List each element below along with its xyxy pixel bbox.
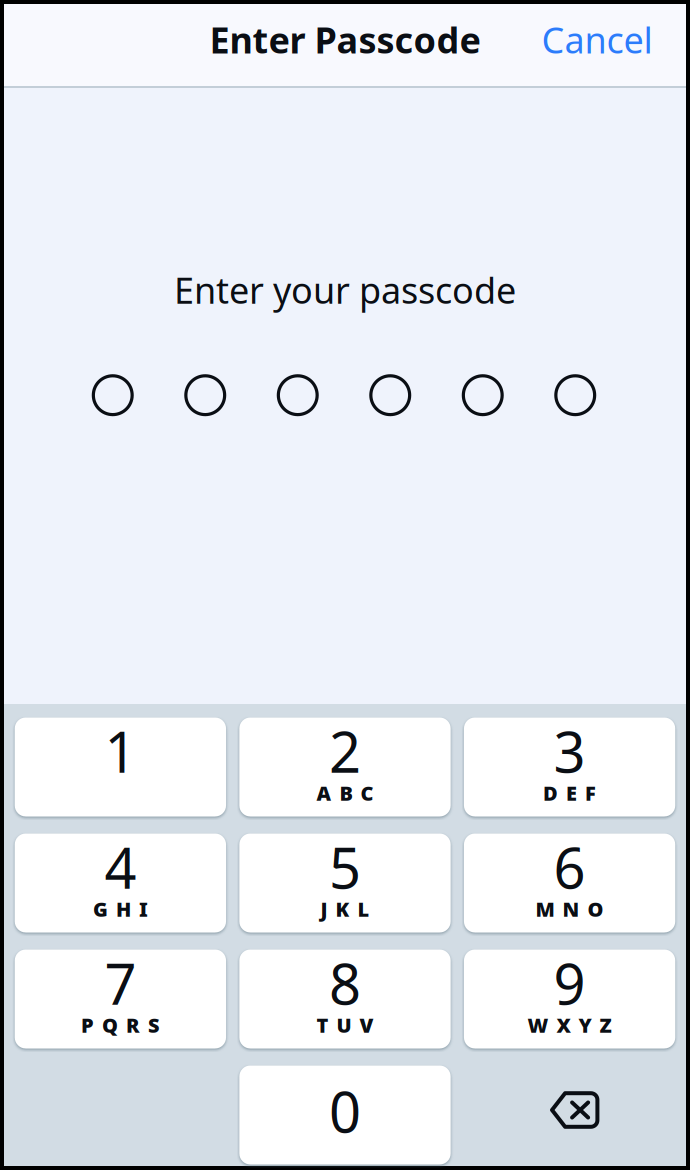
staticText: 3	[554, 714, 586, 788]
staticText: J K L	[320, 896, 369, 922]
button[interactable]: 3	[464, 717, 675, 816]
staticText: 9	[554, 946, 586, 1020]
button[interactable]: 4	[15, 833, 226, 932]
staticText: A B C	[316, 780, 373, 806]
staticText: M N O	[536, 896, 604, 922]
button[interactable]: Delete	[464, 1065, 675, 1164]
staticText: 8	[329, 946, 361, 1020]
staticText: W X Y Z	[528, 1012, 612, 1038]
staticText: Cancel	[541, 16, 652, 63]
button[interactable]: 0	[239, 1065, 451, 1164]
staticText: 1	[104, 714, 136, 788]
button[interactable]: 1	[15, 717, 226, 816]
button[interactable]: 2	[239, 717, 451, 816]
staticText: 5	[329, 830, 361, 904]
staticText: 2	[329, 714, 361, 788]
button[interactable]: 7	[15, 949, 226, 1048]
button[interactable]: 5	[239, 833, 451, 932]
staticText: Enter Passcode	[209, 16, 480, 63]
button[interactable]: 6	[464, 833, 675, 932]
staticText: 4	[104, 830, 136, 904]
staticText: G H I	[93, 896, 148, 922]
staticText: 6	[554, 830, 586, 904]
button[interactable]: 9	[464, 949, 675, 1048]
staticText: 0	[329, 1074, 361, 1148]
staticText: 7	[104, 946, 136, 1020]
button[interactable]: 8	[239, 949, 451, 1048]
staticText: P Q R S	[81, 1012, 160, 1038]
button[interactable]: Cancel	[508, 4, 686, 88]
staticText: D E F	[543, 780, 596, 806]
staticText: T U V	[316, 1012, 373, 1038]
staticText: Enter your passcode	[174, 266, 516, 314]
